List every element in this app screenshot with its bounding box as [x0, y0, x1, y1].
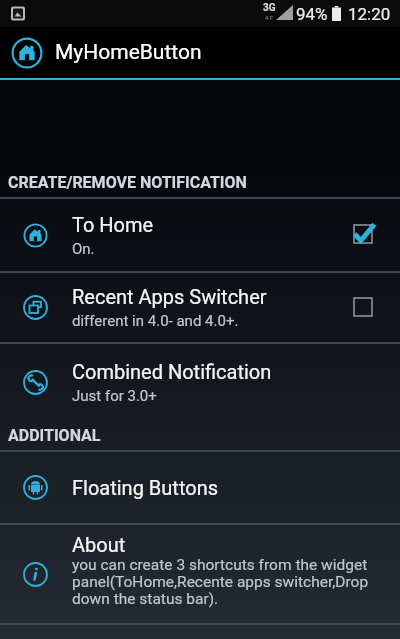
button[interactable]: To Home [341, 212, 387, 258]
staticText: Floating Buttons [72, 476, 218, 499]
staticText: To Home [72, 213, 154, 236]
button[interactable]: Recent Apps Switcher [341, 285, 387, 331]
button[interactable]: Recent Apps Switcher [0, 273, 400, 342]
staticText: MyHomeButton [55, 40, 202, 65]
staticText: On. [72, 240, 95, 258]
staticText: Combined Notification [72, 360, 272, 383]
button[interactable]: Floating Buttons [0, 452, 400, 523]
staticText: About [72, 533, 126, 556]
staticText: Just for 3.0+ [72, 387, 157, 405]
staticText: 12:20 [348, 4, 391, 24]
staticText: 4 F [265, 14, 274, 21]
staticText: 3G [263, 2, 276, 14]
button[interactable]: MyHomeButton [0, 27, 400, 78]
staticText: different in 4.0- and 4.0+. [72, 312, 239, 330]
button[interactable]: Combined Notification [0, 344, 400, 421]
staticText: CREATE/REMOVE NOTIFICATION [8, 173, 247, 192]
staticText: 94% [296, 4, 328, 24]
staticText: Recent Apps Switcher [72, 285, 267, 308]
staticText: ADDITIONAL [8, 426, 101, 445]
button[interactable]: To Home [0, 199, 400, 271]
staticText: you can create 3 shortcuts from the widg… [72, 556, 386, 608]
button[interactable]: About [0, 525, 400, 623]
